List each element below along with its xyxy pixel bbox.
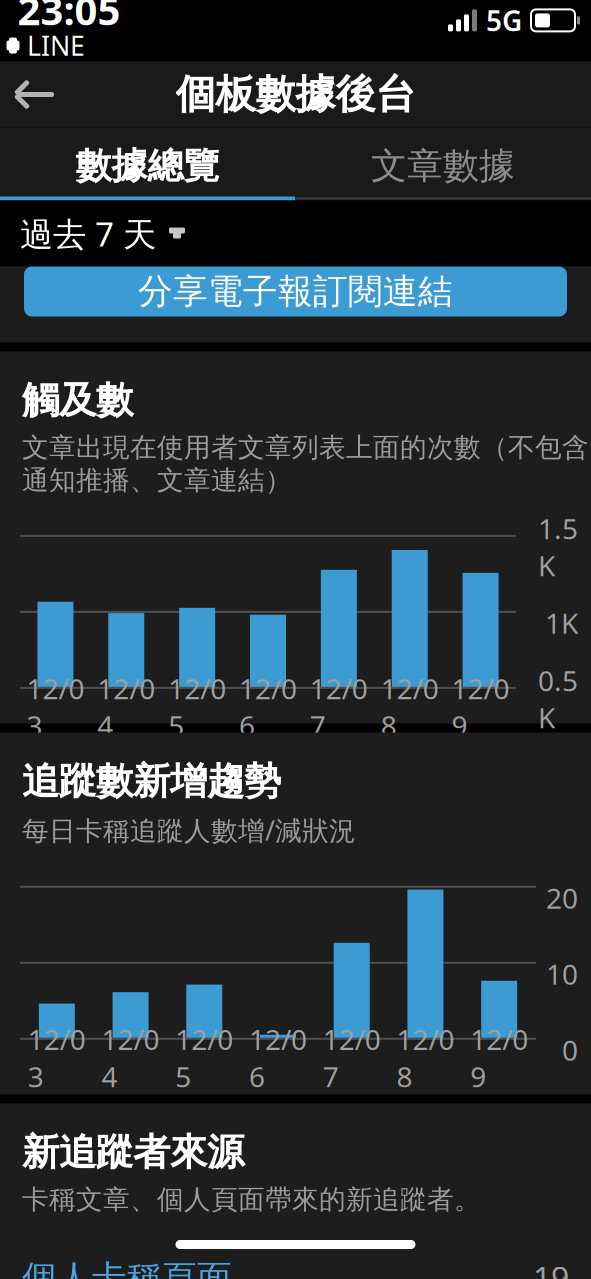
staticText: 12/05: [175, 1021, 233, 1095]
staticText: 12/06: [249, 1021, 307, 1095]
staticText: 12/09: [470, 1021, 528, 1095]
staticText: 個人卡稱頁面: [22, 1257, 232, 1279]
staticText: 1.5K: [538, 510, 578, 584]
staticText: 1K: [545, 604, 578, 641]
button[interactable]: 文章數據: [295, 131, 591, 200]
button[interactable]: 返回: [0, 61, 72, 127]
button[interactable]: 個人卡稱頁面: [0, 1252, 591, 1279]
staticText: 卡稱文章、個人頁面帶來的新追蹤者。: [22, 1183, 481, 1216]
staticText: 12/04: [102, 1021, 160, 1095]
staticText: 文章出現在使用者文章列表上面的次數（不包含通知推播、文章連結）: [22, 431, 589, 497]
staticText: 文章數據: [371, 144, 515, 188]
staticText: 12/04: [97, 670, 155, 744]
staticText: 23:05: [17, 0, 120, 36]
staticText: 觸及數: [22, 377, 133, 423]
staticText: 19: [533, 1257, 569, 1279]
staticText: 12/03: [26, 670, 84, 744]
staticText: 12/05: [168, 670, 226, 744]
staticText: 數據總覽: [75, 144, 219, 188]
staticText: 過去 7 天: [20, 211, 156, 256]
staticText: 0: [562, 1031, 578, 1068]
staticText: 12/06: [239, 670, 297, 744]
staticText: 0.5K: [538, 662, 578, 736]
staticText: 個板數據後台: [175, 70, 415, 119]
staticText: 5G: [486, 2, 522, 39]
button[interactable]: 數據總覽: [0, 131, 295, 200]
staticText: 12/08: [381, 670, 439, 744]
staticText: 新追蹤者來源: [22, 1129, 244, 1175]
staticText: 12/08: [396, 1021, 454, 1095]
button[interactable]: 分享電子報訂閱連結: [24, 266, 567, 316]
staticText: 12/07: [310, 670, 368, 744]
staticText: 每日卡稱追蹤人數增/減狀況: [22, 812, 356, 848]
staticText: 12/03: [28, 1021, 86, 1095]
staticText: 追蹤數新增趨勢: [22, 758, 281, 804]
staticText: 20: [546, 879, 578, 916]
button[interactable]: 過去 7 天: [0, 195, 206, 272]
staticText: 12/07: [323, 1021, 381, 1095]
staticText: 分享電子報訂閱連結: [138, 270, 453, 313]
staticText: 10: [546, 955, 578, 992]
staticText: 12/09: [452, 670, 510, 744]
staticText: LINE: [27, 28, 85, 63]
